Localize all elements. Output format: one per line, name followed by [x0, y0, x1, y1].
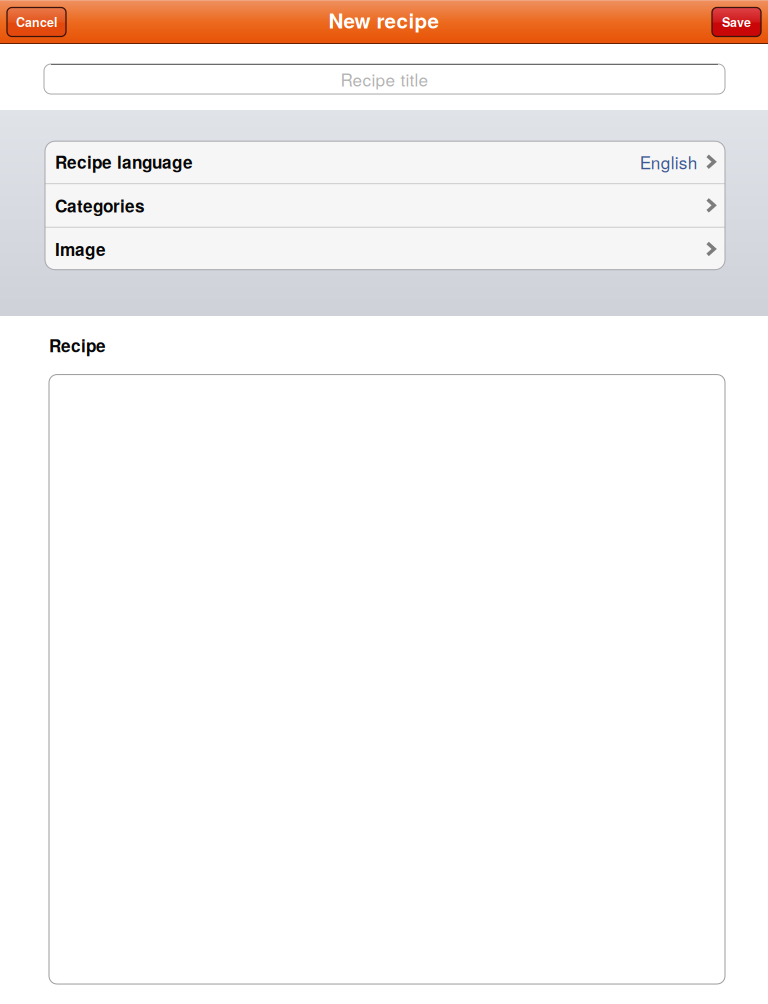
staticText: Recipe — [49, 333, 106, 358]
staticText: New recipe — [328, 5, 439, 35]
staticText: Save — [722, 13, 751, 31]
staticText: Cancel — [16, 13, 57, 31]
button[interactable]: Recipe language — [45, 140, 725, 183]
button[interactable]: Cancel — [7, 7, 66, 36]
staticText: Recipe language — [55, 150, 193, 174]
staticText: Categories — [55, 193, 145, 218]
staticText: Recipe title — [340, 67, 428, 91]
button[interactable]: Recipe text — [0, 358, 768, 1004]
staticText: Image — [55, 237, 106, 261]
staticText: English — [640, 150, 698, 174]
button[interactable]: Image — [45, 228, 725, 270]
button[interactable]: Save — [712, 7, 761, 36]
button[interactable]: Recipe title — [0, 64, 768, 94]
button[interactable]: Categories — [45, 184, 725, 227]
